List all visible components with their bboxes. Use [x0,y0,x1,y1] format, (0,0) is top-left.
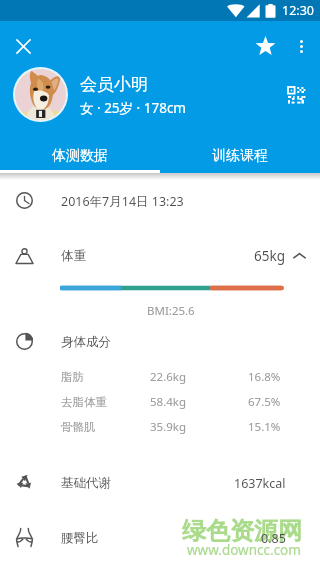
staticText: BMI:25.6 [147,303,195,319]
staticText: 58.4kg [150,394,187,410]
staticText: 0.85 [261,530,286,547]
staticText: 体测数据 [52,147,108,165]
staticText: www.downcc.com [187,541,301,559]
staticText: 22.6kg [150,369,187,385]
button[interactable]: Favorite [248,29,282,63]
staticText: 女 · 25岁 · 178cm [80,99,186,117]
staticText: 2016年7月14日 13:23 [61,193,184,210]
button[interactable]: 训练课程 [160,140,320,172]
staticText: 基础代谢 [61,475,111,491]
button[interactable]: Close [7,30,39,62]
staticText: 训练课程 [212,147,268,165]
button[interactable]: QR code [281,80,311,110]
button[interactable]: 体测数据 [0,140,160,172]
button[interactable]: Profile photo [15,69,66,120]
button[interactable]: Collapse [293,250,306,262]
staticText: 会员小明 [80,74,148,95]
staticText: 去脂体重 [61,395,107,409]
staticText: 15.1% [248,419,281,435]
staticText: 35.9kg [150,419,187,435]
staticText: 1637kcal [234,475,286,492]
staticText: 16.8% [248,369,281,385]
staticText: 骨骼肌 [61,420,96,434]
staticText: 腰臀比 [61,530,99,546]
staticText: 12:30 [282,2,314,19]
staticText: 绿色资源网 [182,516,302,546]
staticText: 脂肪 [61,370,84,384]
staticText: 65kg [254,247,285,265]
button[interactable]: More options [286,31,316,61]
staticText: 67.5% [248,394,281,410]
staticText: 身体成分 [61,334,111,350]
staticText: 体重 [61,248,86,264]
